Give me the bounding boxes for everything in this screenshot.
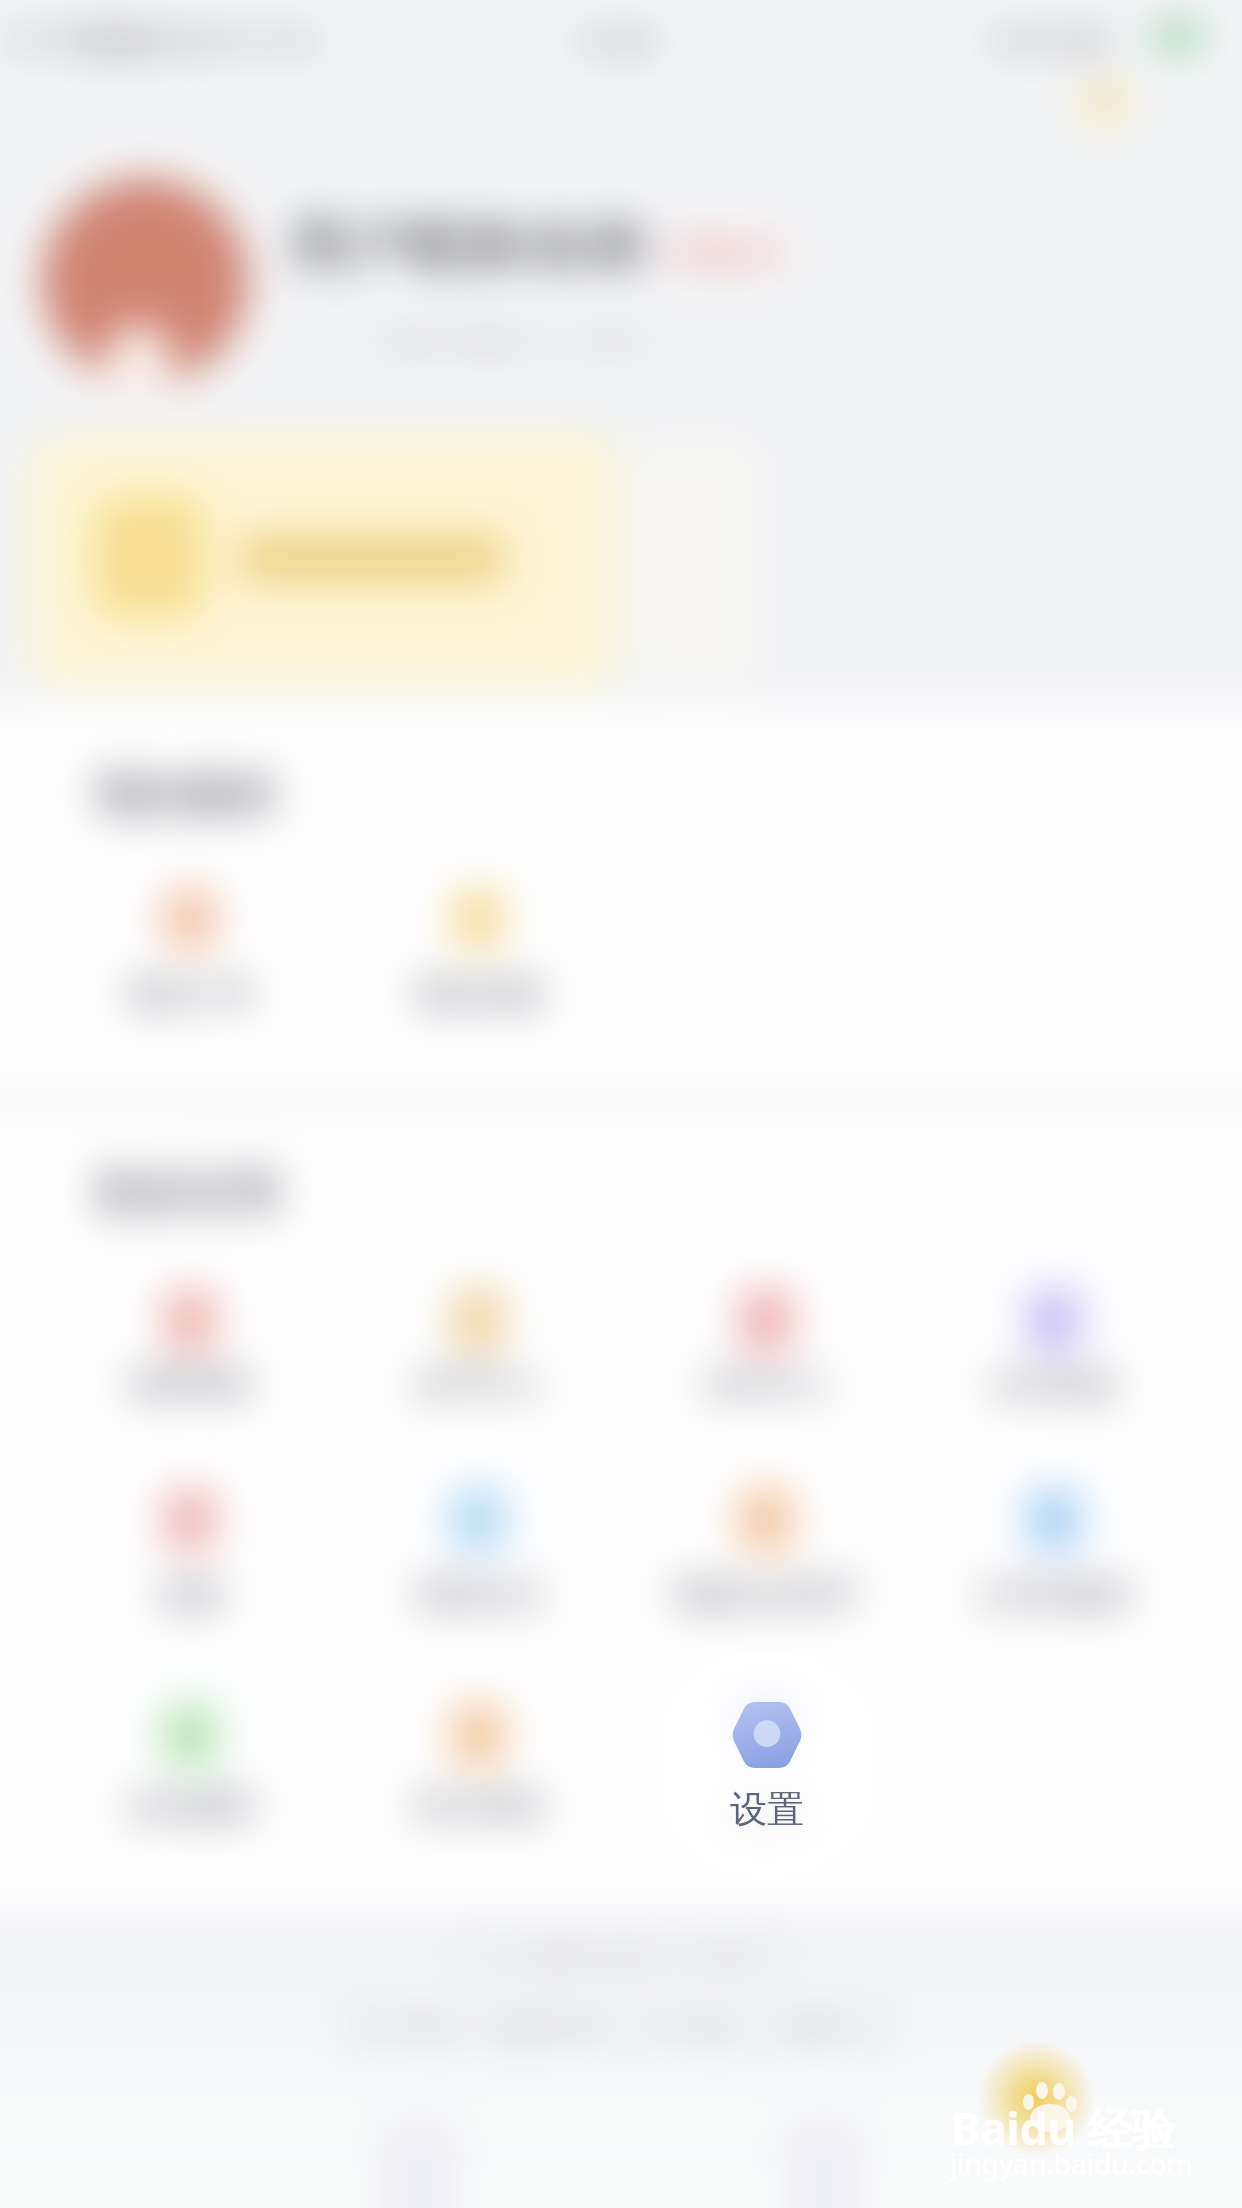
staticText: Baidu 经验 bbox=[951, 2098, 1176, 2158]
button[interactable] bbox=[112, 1260, 268, 1412]
button[interactable] bbox=[688, 1460, 844, 1612]
staticText: 我的订单 bbox=[128, 974, 252, 1013]
staticText: 云空间服务 bbox=[977, 1575, 1132, 1614]
button[interactable] bbox=[30, 436, 618, 686]
button[interactable] bbox=[42, 178, 248, 384]
staticText: 活动中心 bbox=[704, 1364, 828, 1403]
button[interactable] bbox=[400, 859, 556, 1011]
staticText: ıll 中国移动 4G ıll 令 bbox=[8, 18, 318, 62]
button[interactable] bbox=[400, 1260, 556, 1412]
staticText: 我的服务 bbox=[95, 766, 279, 824]
staticText: 设置 bbox=[735, 1786, 797, 1825]
staticText: 直播 bbox=[159, 1575, 221, 1614]
staticText: 智慧生活 bbox=[416, 1575, 540, 1614]
staticText: 金币中心 bbox=[416, 1364, 540, 1403]
button[interactable] bbox=[112, 1675, 268, 1827]
button[interactable] bbox=[112, 1460, 268, 1612]
staticText: 我的收藏 bbox=[416, 974, 540, 1013]
staticText: 开通会员 bbox=[664, 234, 784, 272]
staticText: 运动健康 bbox=[128, 1786, 252, 1825]
staticText: 免费领取 bbox=[128, 1364, 252, 1403]
button[interactable] bbox=[400, 1675, 556, 1827]
staticText: 智能生活助手 bbox=[673, 1575, 859, 1614]
staticText: 积分商城 bbox=[416, 1786, 540, 1825]
staticText: 会员权益 bbox=[992, 1364, 1116, 1403]
button[interactable] bbox=[976, 1460, 1132, 1612]
button[interactable] bbox=[688, 1260, 844, 1412]
staticText: 更多应用 bbox=[95, 1164, 279, 1222]
button[interactable] bbox=[976, 1260, 1132, 1412]
staticText: 设置 bbox=[730, 1786, 804, 1833]
button[interactable] bbox=[688, 1675, 844, 1827]
staticText: jingyan.baidu.com bbox=[950, 2144, 1193, 2182]
button[interactable]: 设置 bbox=[662, 1654, 872, 1882]
button[interactable] bbox=[112, 859, 268, 1011]
button[interactable] bbox=[400, 1460, 556, 1612]
staticText: 用户昵称名称 bbox=[288, 208, 648, 284]
